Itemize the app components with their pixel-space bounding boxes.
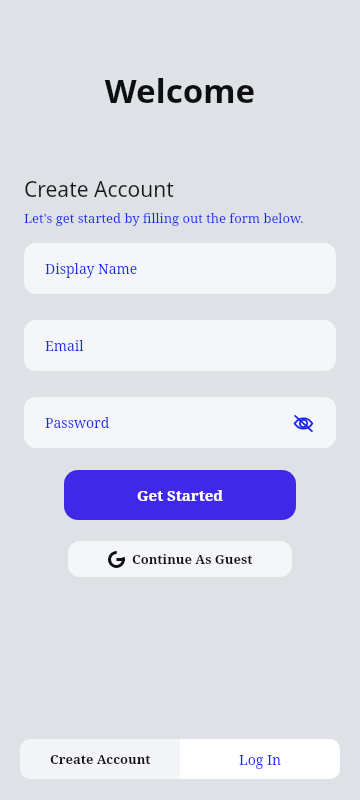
staticText: Continue As Guest — [132, 550, 253, 568]
button[interactable]: Create Account — [20, 739, 180, 779]
staticText: Get Started — [137, 485, 224, 505]
button[interactable]: Show password — [291, 411, 315, 435]
button[interactable]: Get Started — [64, 470, 296, 520]
staticText: Log In — [239, 750, 282, 769]
staticText: Create Account — [24, 175, 174, 204]
button[interactable]: Log In — [180, 739, 340, 779]
button[interactable]: Display Name — [24, 243, 336, 294]
staticText: Create Account — [50, 750, 151, 768]
button[interactable]: Password — [24, 397, 336, 448]
staticText: Password — [45, 413, 110, 432]
button[interactable]: Email — [24, 320, 336, 371]
button[interactable]: Continue As Guest — [68, 541, 292, 577]
staticText: Welcome — [0, 68, 360, 113]
staticText: Let's get started by filling out the for… — [24, 209, 304, 227]
staticText: Email — [45, 336, 84, 355]
staticText: Display Name — [45, 259, 138, 278]
